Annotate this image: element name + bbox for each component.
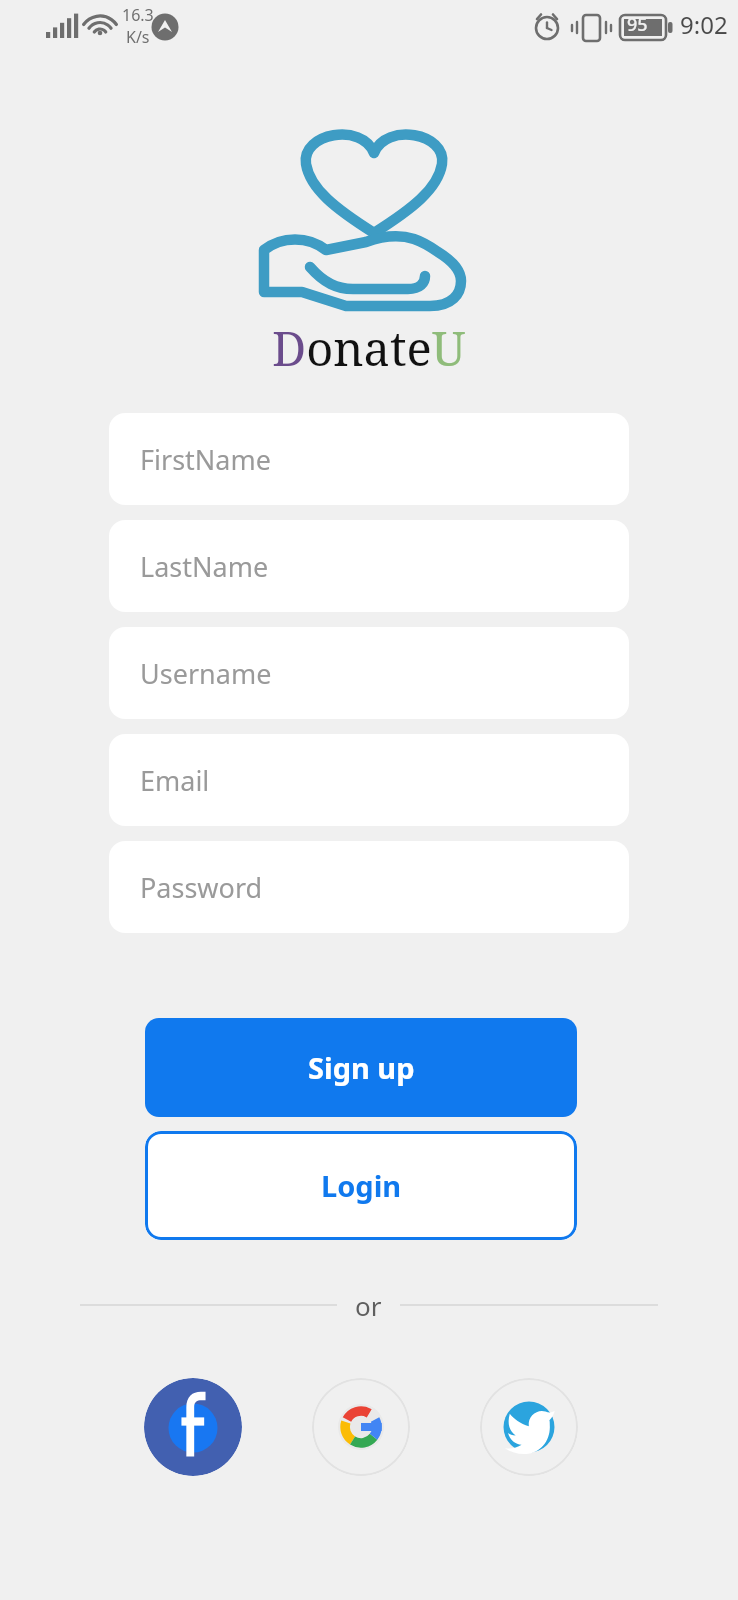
staticText: 9:02 xyxy=(680,8,728,41)
staticText: LastName xyxy=(140,548,269,585)
button[interactable]: Sign in with Google xyxy=(312,1378,410,1476)
button[interactable]: Username xyxy=(109,627,629,719)
button[interactable]: LastName xyxy=(109,520,629,612)
staticText: Login xyxy=(321,1166,402,1205)
staticText: FirstName xyxy=(140,441,271,478)
staticText: Email xyxy=(140,762,210,799)
button[interactable]: Sign in with Facebook xyxy=(144,1378,242,1476)
staticText: Password xyxy=(140,869,263,906)
staticText: Sign up xyxy=(308,1048,415,1087)
staticText: DonateU xyxy=(272,316,466,380)
staticText: K/s xyxy=(126,26,150,48)
button[interactable]: Login xyxy=(145,1131,577,1240)
staticText: Username xyxy=(140,655,272,692)
button[interactable]: Email xyxy=(109,734,629,826)
button[interactable]: FirstName xyxy=(109,413,629,505)
button[interactable]: Sign up xyxy=(145,1018,577,1117)
staticText: 16.3 xyxy=(122,4,154,26)
button[interactable]: Password xyxy=(109,841,629,933)
button[interactable]: Sign in with Twitter xyxy=(480,1378,578,1476)
staticText: or xyxy=(355,1288,382,1322)
staticText: 95 xyxy=(627,12,648,37)
